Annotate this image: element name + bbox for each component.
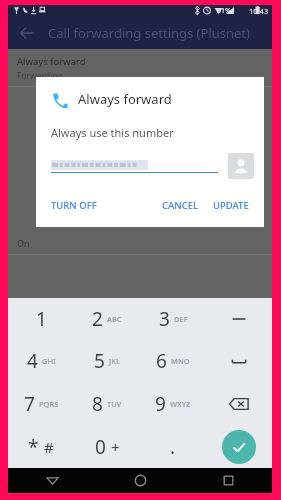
- button[interactable]: 6: [140, 340, 206, 382]
- button[interactable]: Recent apps: [184, 468, 272, 493]
- staticText: 10:43: [249, 6, 269, 16]
- button[interactable]: Space: [206, 340, 272, 382]
- staticText: CANCEL: [162, 199, 199, 212]
- staticText: TUV: [107, 399, 122, 409]
- staticText: 5: [94, 348, 105, 374]
- button[interactable]: 7: [8, 382, 74, 425]
- staticText: 9: [155, 391, 166, 417]
- button[interactable]: UPDATE: [209, 195, 253, 216]
- staticText: 3: [159, 306, 170, 332]
- staticText: Always forward: [17, 55, 86, 68]
- staticText: PQRS: [39, 399, 59, 409]
- staticText: 8: [92, 391, 103, 417]
- staticText: .: [170, 434, 176, 460]
- button[interactable]: 3: [140, 298, 206, 340]
- staticText: #: [44, 437, 54, 457]
- staticText: Always use this number: [51, 125, 174, 140]
- staticText: 1: [36, 306, 47, 332]
- staticText: TURN OFF: [51, 199, 97, 212]
- button[interactable]: 8: [74, 382, 140, 425]
- button[interactable]: 2: [74, 298, 140, 340]
- staticText: DEF: [174, 314, 188, 324]
- staticText: 4: [27, 348, 38, 374]
- button[interactable]: .: [140, 425, 206, 468]
- button[interactable]: Home: [96, 468, 184, 493]
- button[interactable]: 9: [140, 382, 206, 425]
- staticText: Always forward: [78, 90, 172, 108]
- button[interactable]: 4: [8, 340, 74, 382]
- staticText: GHI: [42, 356, 56, 366]
- button[interactable]: Done: [206, 425, 272, 468]
- button[interactable]: Backspace: [206, 382, 272, 425]
- staticText: 7: [24, 391, 35, 417]
- staticText: 2: [92, 306, 103, 332]
- button[interactable]: TURN OFF: [47, 195, 101, 216]
- staticText: Call forwarding settings (Plusnet): [48, 24, 250, 42]
- staticText: 6: [156, 348, 167, 374]
- staticText: WXYZ: [170, 399, 191, 409]
- button[interactable]: 1: [8, 298, 74, 340]
- staticText: +: [111, 437, 120, 457]
- button[interactable]: *: [8, 425, 74, 468]
- button[interactable]: 5: [74, 340, 140, 382]
- staticText: *: [28, 434, 39, 460]
- staticText: MNO: [171, 356, 190, 366]
- button[interactable]: Dash: [206, 298, 272, 340]
- button[interactable]: Choose contact: [228, 153, 254, 179]
- staticText: ABC: [107, 314, 122, 324]
- staticText: 91%: [217, 6, 231, 16]
- staticText: Forwarding: [17, 70, 63, 82]
- button[interactable]: CANCEL: [158, 195, 203, 216]
- staticText: 0: [95, 434, 106, 460]
- button[interactable]: Back: [8, 468, 96, 493]
- staticText: JKL: [109, 356, 120, 366]
- button[interactable]: 0: [74, 425, 140, 468]
- staticText: UPDATE: [213, 199, 249, 212]
- staticText: On: [17, 237, 30, 249]
- button[interactable]: Back: [14, 20, 40, 46]
